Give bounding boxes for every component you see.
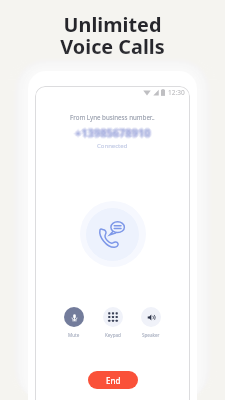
staticText: +13985678910 [75,127,151,142]
staticText: Speaker [142,332,160,338]
staticText: +13985678910 [74,126,150,141]
button[interactable]: Mute [64,307,84,338]
staticText: +13985678910 [73,125,149,140]
staticText: End [106,375,121,386]
staticText: +13985678910 [75,126,151,141]
staticText: +13985678910 [75,125,151,140]
staticText: Connected [97,142,128,150]
button[interactable]: End [88,371,138,389]
staticText: +13985678910 [75,124,151,139]
staticText: Unlimited Voice Calls [60,11,165,60]
staticText: +13985678910 [74,125,150,140]
staticText: +13985678910 [74,124,150,139]
staticText: Mute [68,332,80,338]
staticText: From Lyne business number.. [70,113,155,121]
staticText: +13985678910 [76,124,152,139]
staticText: +13985678910 [76,125,152,140]
staticText: Keypad [105,332,121,338]
button[interactable]: Speaker [141,307,161,338]
staticText: +13985678910 [77,125,153,140]
staticText: +13985678910 [76,126,152,141]
staticText: +13985678910 [75,123,151,138]
staticText: 12:30 [168,88,185,97]
button[interactable]: Keypad [103,307,123,338]
